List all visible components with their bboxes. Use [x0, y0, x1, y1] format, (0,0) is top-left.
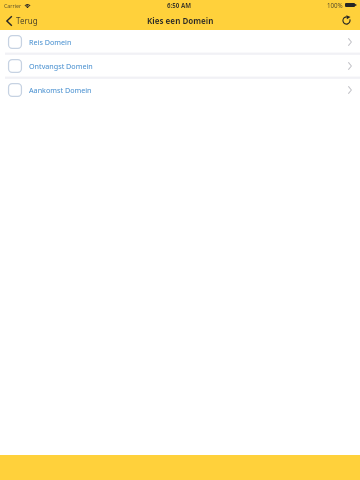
- staticText: Terug: [16, 15, 38, 26]
- staticText: 6:50 AM: [31, 1, 327, 9]
- staticText: Ontvangst Domein: [29, 61, 348, 71]
- button[interactable]: Select Ontvangst Domein: [0, 54, 360, 78]
- staticText: Kies een Domein: [147, 15, 214, 26]
- button[interactable]: Select Aankomst Domein: [8, 83, 22, 97]
- staticText: Carrier: [4, 2, 22, 9]
- button[interactable]: Refresh: [336, 12, 360, 29]
- button[interactable]: Select Aankomst Domein: [0, 78, 360, 102]
- button[interactable]: Select Reis Domein: [0, 30, 360, 54]
- button[interactable]: Select Reis Domein: [8, 35, 22, 49]
- button[interactable]: Terug: [0, 14, 44, 27]
- staticText: Reis Domein: [29, 37, 348, 47]
- staticText: Aankomst Domein: [29, 85, 348, 95]
- button[interactable]: Select Ontvangst Domein: [8, 59, 22, 73]
- staticText: 100%: [327, 1, 343, 9]
